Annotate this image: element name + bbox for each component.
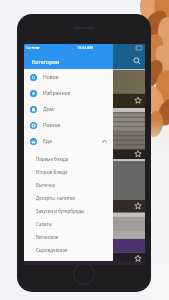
staticText: Категории <box>32 58 60 65</box>
staticText: Carrier <box>26 45 38 50</box>
other: Collapse <box>101 138 108 145</box>
button[interactable]: Салаты <box>24 217 113 230</box>
button[interactable]: Еда <box>24 133 113 149</box>
staticText: Новое <box>43 74 59 81</box>
button[interactable]: Вторые блюда <box>24 165 113 178</box>
button[interactable]: Выпечка <box>24 178 113 191</box>
button[interactable]: Дом <box>24 101 113 117</box>
button[interactable]: Разное <box>24 117 113 133</box>
staticText: Салаты <box>36 221 52 227</box>
staticText: Еда <box>43 138 52 145</box>
staticText: Веганское <box>36 234 59 240</box>
button[interactable]: Новое <box>24 69 113 85</box>
button[interactable]: Первые блюда <box>24 152 113 165</box>
staticText: Первые блюда <box>36 156 69 162</box>
staticText: Избранное <box>43 90 71 97</box>
button[interactable]: Десерты, напитки <box>24 191 113 204</box>
button[interactable]: Search <box>130 54 143 67</box>
staticText: Выпечка <box>36 182 55 188</box>
button[interactable]: Закуски и бутерброды <box>24 204 113 217</box>
staticText: 10:44 AM <box>77 45 93 50</box>
staticText: Разное <box>43 122 61 129</box>
staticText: Дом <box>43 106 54 113</box>
staticText: Десерты, напитки <box>36 195 76 201</box>
staticText: Сыроедческое <box>36 247 68 253</box>
button[interactable]: Избранное <box>24 85 113 101</box>
button[interactable]: Веганское <box>24 230 113 243</box>
staticText: Закуски и бутерброды <box>36 208 85 214</box>
button[interactable]: Сыроедческое <box>24 243 113 256</box>
staticText: Вторые блюда <box>36 169 68 175</box>
